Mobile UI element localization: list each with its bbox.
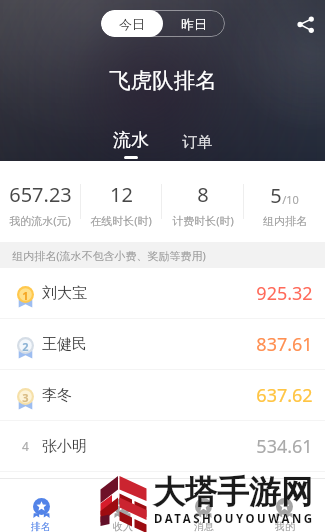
staticText: 5 <box>270 182 282 209</box>
button[interactable]: 2 <box>0 319 325 369</box>
button[interactable]: 3 <box>0 370 325 420</box>
staticText: 王健民 <box>42 335 87 354</box>
staticText: 大塔手游网 <box>153 472 313 512</box>
staticText: 在线时长(时) <box>90 213 152 228</box>
staticText: 837.61 <box>256 332 313 357</box>
button[interactable]: 分享 <box>291 10 319 38</box>
button[interactable]: 订单 <box>182 133 212 159</box>
staticText: 订单 <box>182 133 212 152</box>
staticText: 657.23 <box>9 181 72 208</box>
staticText: 2 <box>22 339 29 354</box>
staticText: 组内排名 <box>263 214 307 228</box>
button[interactable]: 排名 <box>0 479 82 532</box>
staticText: 李冬 <box>42 386 72 405</box>
staticText: 我的流水(元) <box>9 213 71 228</box>
staticText: 组内排名(流水不包含小费、奖励等费用) <box>12 248 206 263</box>
staticText: 4 <box>22 438 29 454</box>
staticText: 飞虎队排名 <box>109 67 217 94</box>
button[interactable]: 收入 <box>82 479 163 532</box>
staticText: 昨日 <box>181 16 207 32</box>
staticText: 3 <box>22 390 29 405</box>
staticText: 消息 <box>194 520 214 532</box>
button[interactable]: 1 <box>0 268 325 318</box>
button[interactable]: 我的 <box>244 479 325 532</box>
staticText: 计费时长(时) <box>172 213 234 228</box>
staticText: 排名 <box>31 520 51 532</box>
staticText: 流水 <box>113 129 149 152</box>
staticText: 张小明 <box>42 437 87 456</box>
button[interactable]: 流水 <box>113 129 149 159</box>
staticText: 收入 <box>113 520 133 532</box>
button[interactable]: 昨日 <box>163 10 225 37</box>
staticText: 925.32 <box>256 281 313 306</box>
staticText: 534.61 <box>256 434 313 459</box>
button[interactable]: 今日 <box>101 10 163 37</box>
staticText: 刘大宝 <box>42 284 87 303</box>
staticText: 1 <box>22 288 29 303</box>
button[interactable]: 消息 <box>163 479 244 532</box>
staticText: /10 <box>282 192 299 207</box>
staticText: 12 <box>110 181 133 208</box>
staticText: 我的 <box>275 520 295 532</box>
staticText: 637.62 <box>256 383 313 408</box>
staticText: 8 <box>197 181 209 208</box>
button[interactable]: 4 <box>0 421 325 471</box>
staticText: 今日 <box>119 16 145 32</box>
staticText: DATASHOUYOUWANG <box>154 511 315 527</box>
